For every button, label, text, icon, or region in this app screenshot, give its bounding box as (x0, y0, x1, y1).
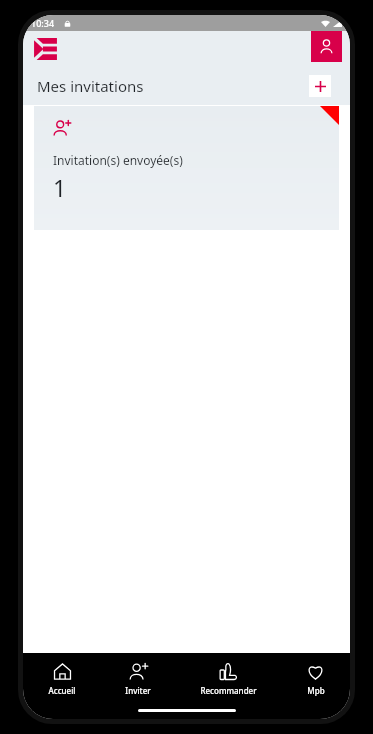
staticText: Recommander (200, 685, 257, 696)
staticText: Invitation(s) envoyée(s) (53, 152, 183, 168)
button[interactable]: Profil (311, 31, 342, 62)
staticText: 10:34 (31, 17, 55, 29)
staticText: Inviter (125, 685, 151, 696)
staticText: Mes invitations (37, 76, 144, 96)
staticText: Mpb (307, 685, 325, 696)
staticText: Accueil (48, 685, 76, 696)
button[interactable]: Recommander (194, 660, 263, 698)
button[interactable]: Inviter (119, 660, 157, 698)
staticText: 1 (53, 172, 67, 203)
button[interactable]: Logo (33, 36, 59, 62)
button[interactable]: Ajouter une invitation (309, 75, 331, 97)
button[interactable]: Invitation(s) envoyée(s) (34, 106, 339, 230)
button[interactable]: Mpb (300, 660, 331, 698)
button[interactable]: Accueil (42, 660, 82, 698)
